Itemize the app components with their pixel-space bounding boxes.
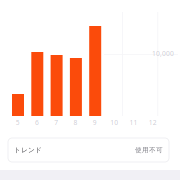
button[interactable]: トレンド [8, 138, 169, 162]
staticText: 使用不可 [135, 146, 163, 154]
staticText: 7 [54, 118, 58, 127]
staticText: 8 [74, 118, 78, 127]
staticText: 11 [129, 118, 137, 127]
staticText: 12 [149, 118, 157, 127]
staticText: トレンド [14, 146, 42, 154]
staticText: 10,000 [152, 49, 174, 58]
staticText: 5 [16, 118, 20, 127]
staticText: 9 [93, 118, 97, 127]
staticText: 6 [35, 118, 39, 127]
staticText: 10 [110, 118, 118, 127]
